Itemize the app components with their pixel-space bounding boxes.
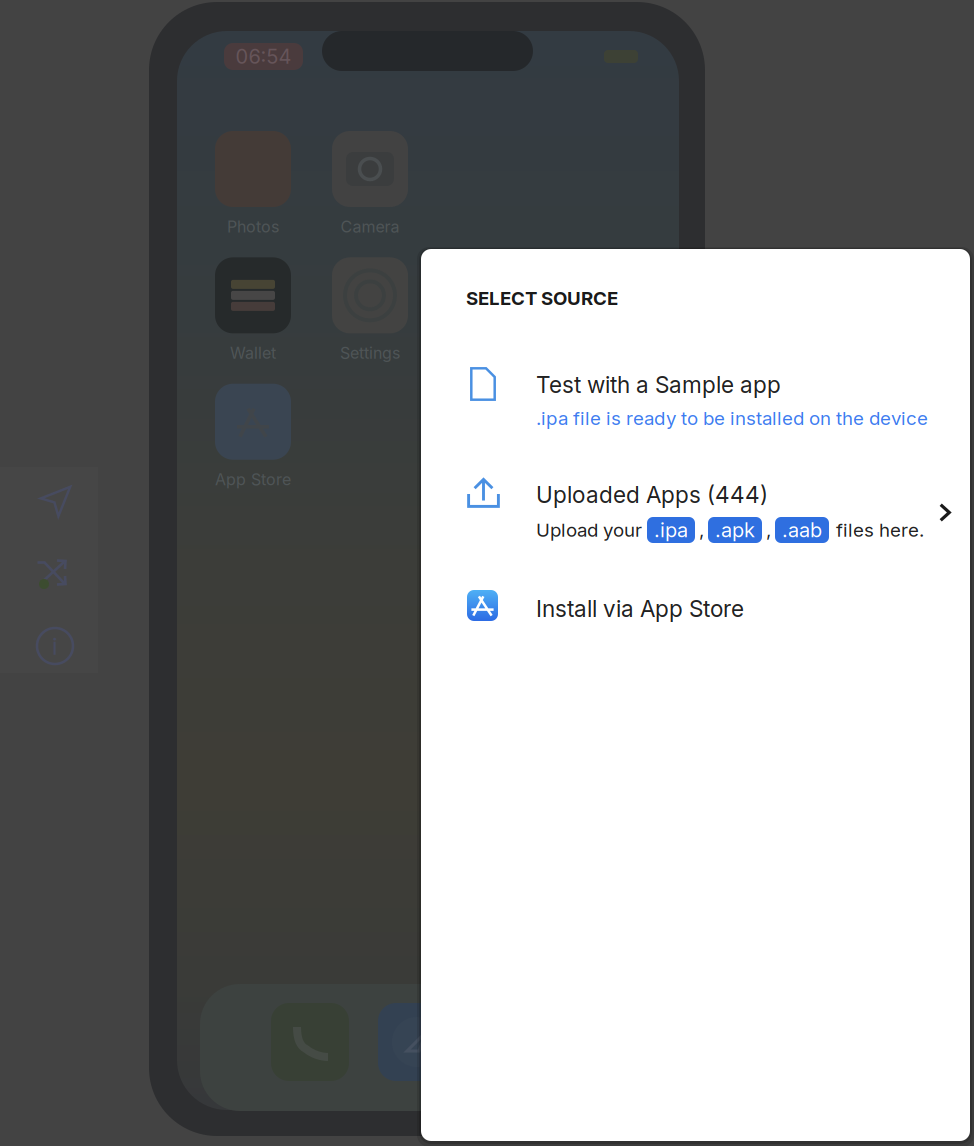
- staticText: Wallet: [230, 343, 276, 363]
- staticText: 06:54: [235, 44, 291, 69]
- button[interactable]: Set GPS location: [0, 467, 98, 538]
- staticText: i: [52, 631, 58, 660]
- staticText: Test with a Sample app: [536, 371, 781, 398]
- staticText: .ipa file is ready to be installed on th…: [536, 407, 928, 430]
- button[interactable]: Test with a Sample app: [421, 357, 970, 443]
- staticText: ,: [766, 519, 771, 541]
- button[interactable]: Network throttling: [0, 538, 98, 609]
- staticText: Photos: [227, 217, 279, 236]
- staticText: .aab: [782, 518, 822, 542]
- staticText: .apk: [715, 518, 755, 542]
- button[interactable]: Device information: [0, 609, 98, 673]
- staticText: ,: [699, 519, 704, 541]
- staticText: App Store: [215, 470, 291, 489]
- staticText: Install via App Store: [536, 595, 744, 622]
- staticText: Uploaded Apps (444): [536, 481, 768, 508]
- staticText: Settings: [340, 343, 400, 363]
- staticText: .ipa: [654, 518, 688, 542]
- button[interactable]: Uploaded Apps (444): [421, 467, 970, 553]
- staticText: Camera: [340, 217, 399, 236]
- button[interactable]: Install via App Store: [421, 581, 970, 631]
- staticText: Upload your: [536, 519, 642, 541]
- staticText: SELECT SOURCE: [466, 287, 618, 310]
- staticText: files here.: [836, 519, 924, 541]
